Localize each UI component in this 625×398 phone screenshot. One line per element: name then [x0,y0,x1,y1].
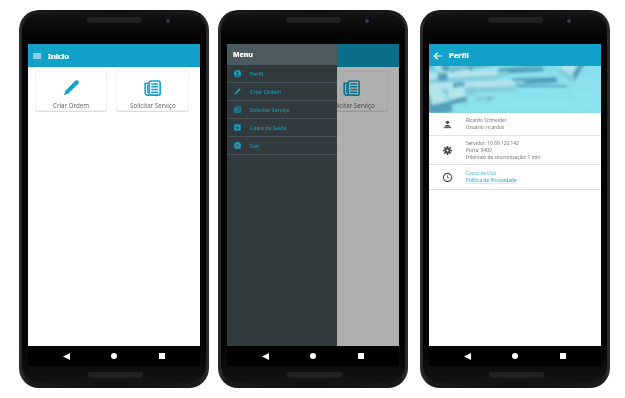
staticText: Solicitar Serviço [250,106,290,113]
button[interactable]: Back [255,346,275,366]
staticText: Criar Ordem [250,88,282,95]
button[interactable]: Solicitar Serviço [117,72,188,110]
staticText: Porta: 9400 [466,147,492,154]
staticText: Caixa de Saída [250,124,287,131]
button[interactable]: Caixa de Saída [227,119,337,136]
button[interactable]: Back [56,346,76,366]
staticText: Perfil [250,70,264,77]
staticText: Menu [233,50,253,60]
staticText: Sair [250,142,260,149]
staticText: Ricardo Schneider [466,117,507,124]
button[interactable]: Criar Ordem [227,83,337,100]
staticText: Perfil [449,50,469,60]
button[interactable]: Home [505,346,525,366]
staticText: Início [48,51,69,61]
button[interactable]: Criar Ordem [36,72,106,110]
button[interactable]: Perfil [227,65,337,82]
button[interactable]: Sair [227,137,337,154]
staticText: Criar Ordem [252,101,289,109]
button[interactable]: Back [457,346,477,366]
staticText: Casos de Uso [466,170,497,177]
button[interactable]: Solicitar Serviço [227,101,337,118]
staticText: Solicitar Serviço [130,101,176,109]
button[interactable]: Back [430,48,445,63]
staticText: Usuário: ricardos [466,124,505,131]
staticText: Criar Ordem [53,101,90,109]
button[interactable]: Home [104,346,124,366]
staticText: Política de Privacidade [466,177,517,184]
button[interactable]: Recents [152,346,172,366]
button[interactable]: Home [303,346,323,366]
staticText: Solicitar Serviço [329,101,375,109]
button[interactable]: Criar Ordem [235,72,305,110]
button[interactable]: Casos de Uso [429,165,601,189]
button[interactable]: Recents [351,346,371,366]
button[interactable]: Servidor: 10.69.120.142 [429,136,601,164]
button[interactable]: Recents [553,346,573,366]
staticText: Intervalo de sincronização: 1 min [466,154,541,161]
button[interactable]: Menu [29,48,44,63]
button[interactable]: Ricardo Schneider [429,113,601,135]
staticText: Servidor: 10.69.120.142 [466,140,519,147]
button[interactable]: Solicitar Serviço [316,72,387,110]
